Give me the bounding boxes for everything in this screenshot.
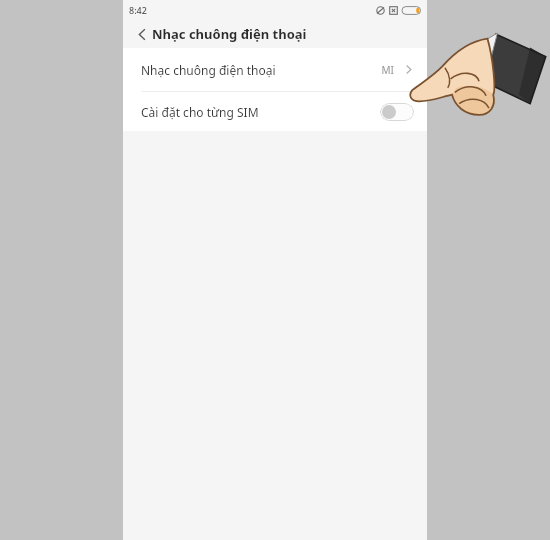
button[interactable]: Cài đặt cho từng SIM toggle <box>380 103 414 121</box>
staticText: MI <box>381 63 394 77</box>
staticText: Nhạc chuông điện thoại <box>152 25 307 43</box>
button[interactable]: Nhạc chuông điện thoại <box>123 48 427 91</box>
button[interactable]: Back <box>131 23 153 45</box>
other: Pointing hand <box>408 14 550 126</box>
staticText: 8:42 <box>129 4 147 16</box>
staticText: Cài đặt cho từng SIM <box>141 104 259 120</box>
button[interactable]: Cài đặt cho từng SIM <box>123 92 427 131</box>
staticText: Nhạc chuông điện thoại <box>141 62 276 78</box>
